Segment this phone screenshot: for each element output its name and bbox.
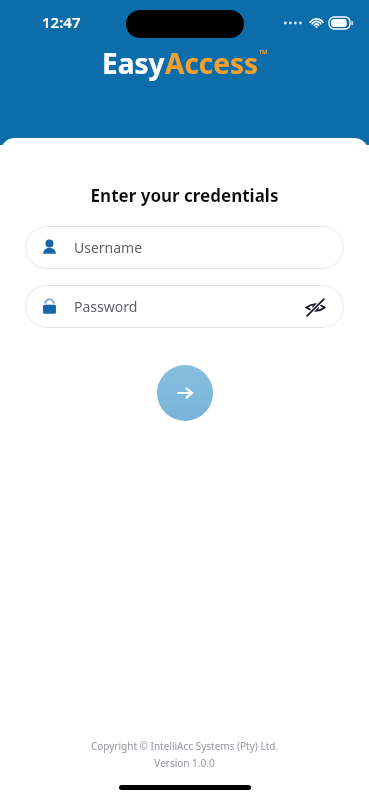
staticText: Enter your credentials <box>0 184 369 207</box>
staticText: Access <box>165 44 259 82</box>
staticText: Easy <box>102 44 165 82</box>
button[interactable]: Show password <box>302 294 328 320</box>
staticText: Username <box>74 238 328 257</box>
button[interactable]: Password <box>25 285 344 328</box>
staticText: Copyright © IntelliAcc Systems (Pty) Ltd… <box>0 739 369 753</box>
staticText: ™ <box>259 46 268 61</box>
button[interactable]: Sign in <box>157 365 213 421</box>
button[interactable]: Username <box>25 226 344 269</box>
staticText: Version 1.0.0 <box>0 756 369 770</box>
staticText: 12:47 <box>42 12 81 32</box>
staticText: Password <box>74 297 302 316</box>
